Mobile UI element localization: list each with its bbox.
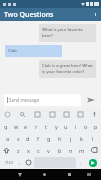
button[interactable]: Send bbox=[85, 157, 100, 168]
button[interactable]: Search bbox=[15, 109, 30, 120]
button[interactable]: w bbox=[11, 120, 21, 132]
staticText: s bbox=[17, 135, 20, 142]
button[interactable]: Menu bbox=[81, 169, 96, 180]
button[interactable]: k bbox=[76, 132, 87, 144]
staticText: w bbox=[14, 123, 19, 130]
button[interactable]: x bbox=[23, 144, 33, 156]
button[interactable]: o bbox=[81, 120, 91, 132]
button[interactable]: i bbox=[71, 120, 81, 132]
staticText: f bbox=[37, 135, 39, 142]
staticText: x bbox=[27, 147, 30, 154]
staticText: ?123 bbox=[5, 160, 13, 165]
button[interactable]: d bbox=[23, 132, 33, 144]
button[interactable]: ?123 bbox=[1, 157, 16, 168]
staticText: h bbox=[58, 135, 62, 142]
button[interactable]: h bbox=[54, 132, 65, 144]
button[interactable]: g bbox=[43, 132, 54, 144]
staticText: . bbox=[80, 159, 82, 166]
button[interactable]: e bbox=[21, 120, 31, 132]
button[interactable]: j bbox=[65, 132, 76, 144]
button[interactable]: p bbox=[91, 120, 101, 132]
button[interactable]: v bbox=[43, 144, 54, 156]
staticText: , bbox=[19, 159, 21, 166]
staticText: k bbox=[80, 135, 83, 142]
button[interactable]: z bbox=[13, 144, 23, 156]
button[interactable]: Voice input bbox=[87, 109, 101, 120]
staticText: u bbox=[64, 123, 68, 130]
staticText: a bbox=[6, 135, 10, 142]
button[interactable]: Google bbox=[0, 109, 15, 120]
button[interactable]: Send bbox=[85, 94, 97, 106]
button[interactable]: c bbox=[33, 144, 43, 156]
staticText: y bbox=[55, 123, 58, 130]
button[interactable]: u bbox=[61, 120, 71, 132]
button[interactable]: n bbox=[65, 144, 76, 156]
button[interactable]: t bbox=[41, 120, 51, 132]
button[interactable]: q bbox=[0, 120, 11, 132]
button[interactable]: Emoji bbox=[24, 157, 33, 168]
button[interactable]: Keyboard tool 4 bbox=[73, 109, 87, 120]
staticText: Two Questions bbox=[4, 10, 54, 20]
staticText: Send message bbox=[9, 97, 39, 103]
button[interactable]: Keyboard tool 3 bbox=[59, 109, 73, 120]
button[interactable]: r bbox=[31, 120, 41, 132]
staticText: c bbox=[37, 147, 40, 154]
button[interactable]: s bbox=[13, 132, 23, 144]
staticText: q bbox=[4, 123, 8, 130]
button[interactable]: l bbox=[87, 132, 98, 144]
button[interactable]: Home bbox=[37, 169, 52, 180]
button[interactable]: Recents bbox=[62, 169, 77, 180]
staticText: d bbox=[26, 135, 30, 142]
staticText: i bbox=[75, 123, 77, 130]
staticText: b bbox=[58, 147, 62, 154]
staticText: m bbox=[79, 147, 85, 154]
button[interactable]: What is your favorite beer? bbox=[39, 24, 96, 42]
button[interactable]: Back bbox=[12, 169, 27, 180]
staticText: r bbox=[35, 123, 38, 130]
staticText: t bbox=[45, 123, 47, 130]
button[interactable]: More options bbox=[89, 8, 101, 21]
staticText: v bbox=[47, 147, 50, 154]
button[interactable]: Keyboard tool 2 bbox=[45, 109, 59, 120]
button[interactable]: Backspace bbox=[87, 144, 101, 156]
button[interactable]: Shift bbox=[0, 144, 13, 156]
button[interactable]: , bbox=[16, 157, 24, 168]
staticText: l bbox=[92, 135, 94, 142]
button[interactable]: b bbox=[54, 144, 65, 156]
button[interactable]: f bbox=[33, 132, 43, 144]
staticText: j bbox=[70, 135, 72, 142]
staticText: p bbox=[94, 123, 98, 130]
button[interactable]: y bbox=[51, 120, 61, 132]
staticText: z bbox=[17, 147, 20, 154]
button[interactable]: Send message bbox=[4, 94, 81, 106]
button[interactable]: Keyboard tool 1 bbox=[30, 109, 45, 120]
staticText: What is your favorite beer? bbox=[42, 27, 93, 39]
staticText: Club is a great beer! What is your favor… bbox=[42, 63, 93, 75]
button[interactable]: a bbox=[3, 132, 13, 144]
staticText: g bbox=[47, 135, 51, 142]
button[interactable]: Club is a great beer! What is your favor… bbox=[39, 60, 96, 78]
button[interactable]: m bbox=[76, 144, 87, 156]
button[interactable]: . bbox=[77, 157, 85, 168]
staticText: Club bbox=[8, 48, 17, 54]
staticText: o bbox=[84, 123, 88, 130]
staticText: n bbox=[69, 147, 73, 154]
staticText: e bbox=[24, 123, 28, 130]
button[interactable]: Club bbox=[5, 45, 62, 57]
